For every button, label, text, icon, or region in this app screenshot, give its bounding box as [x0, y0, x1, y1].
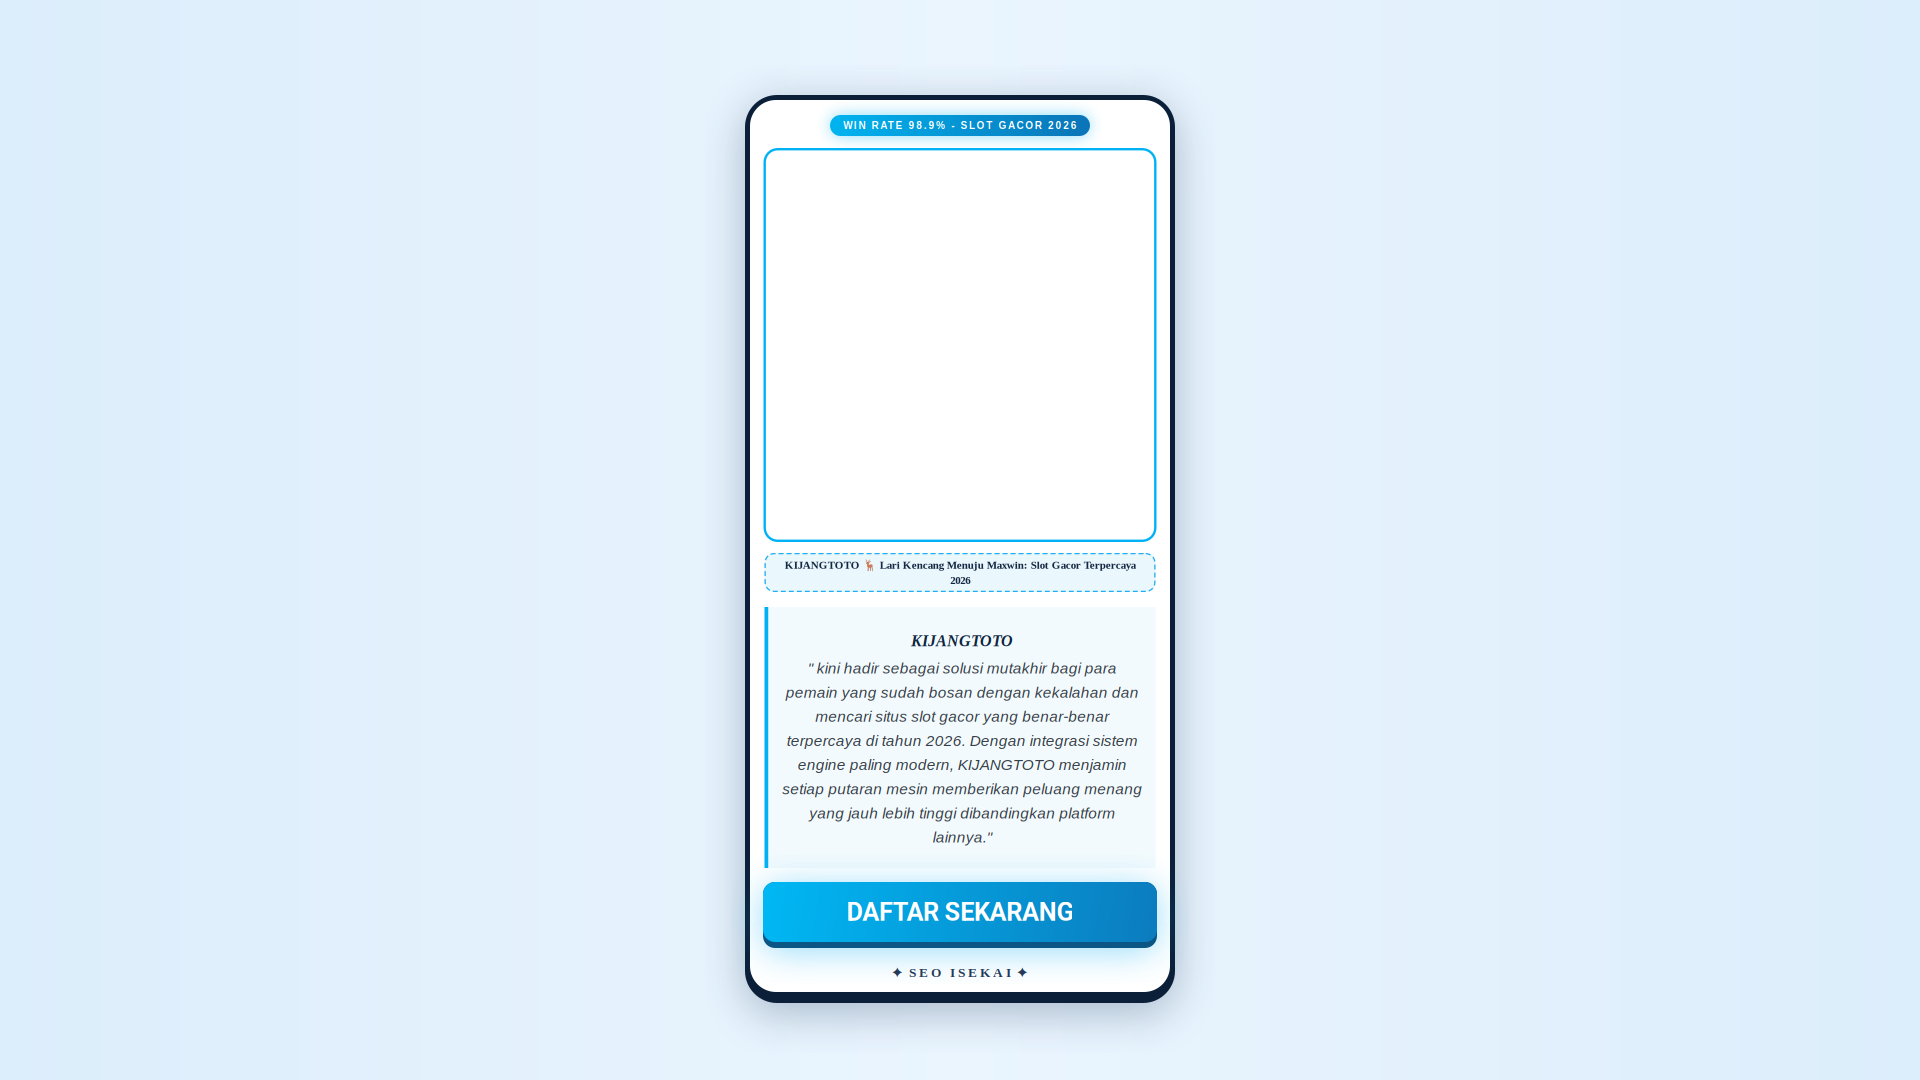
button[interactable]: KIJANGTOTO banner	[763, 148, 1156, 542]
button[interactable]: DAFTAR SEKARANG	[763, 882, 1157, 948]
staticText: " kini hadir sebagai solusi mutakhir bag…	[782, 660, 1142, 846]
staticText: WIN RATE 98.9% - SLOT GACOR 2026	[843, 120, 1077, 131]
button[interactable]: KIJANGTOTO 🦌 Lari Kencang Menuju Maxwin:…	[764, 553, 1155, 592]
staticText: ✦ S E O I S E K A I ✦	[892, 965, 1028, 980]
staticText: KIJANGTOTO	[911, 632, 1013, 650]
staticText: DAFTAR SEKARANG	[847, 897, 1073, 927]
staticText: KIJANGTOTO 🦌 Lari Kencang Menuju Maxwin:…	[784, 558, 1135, 586]
